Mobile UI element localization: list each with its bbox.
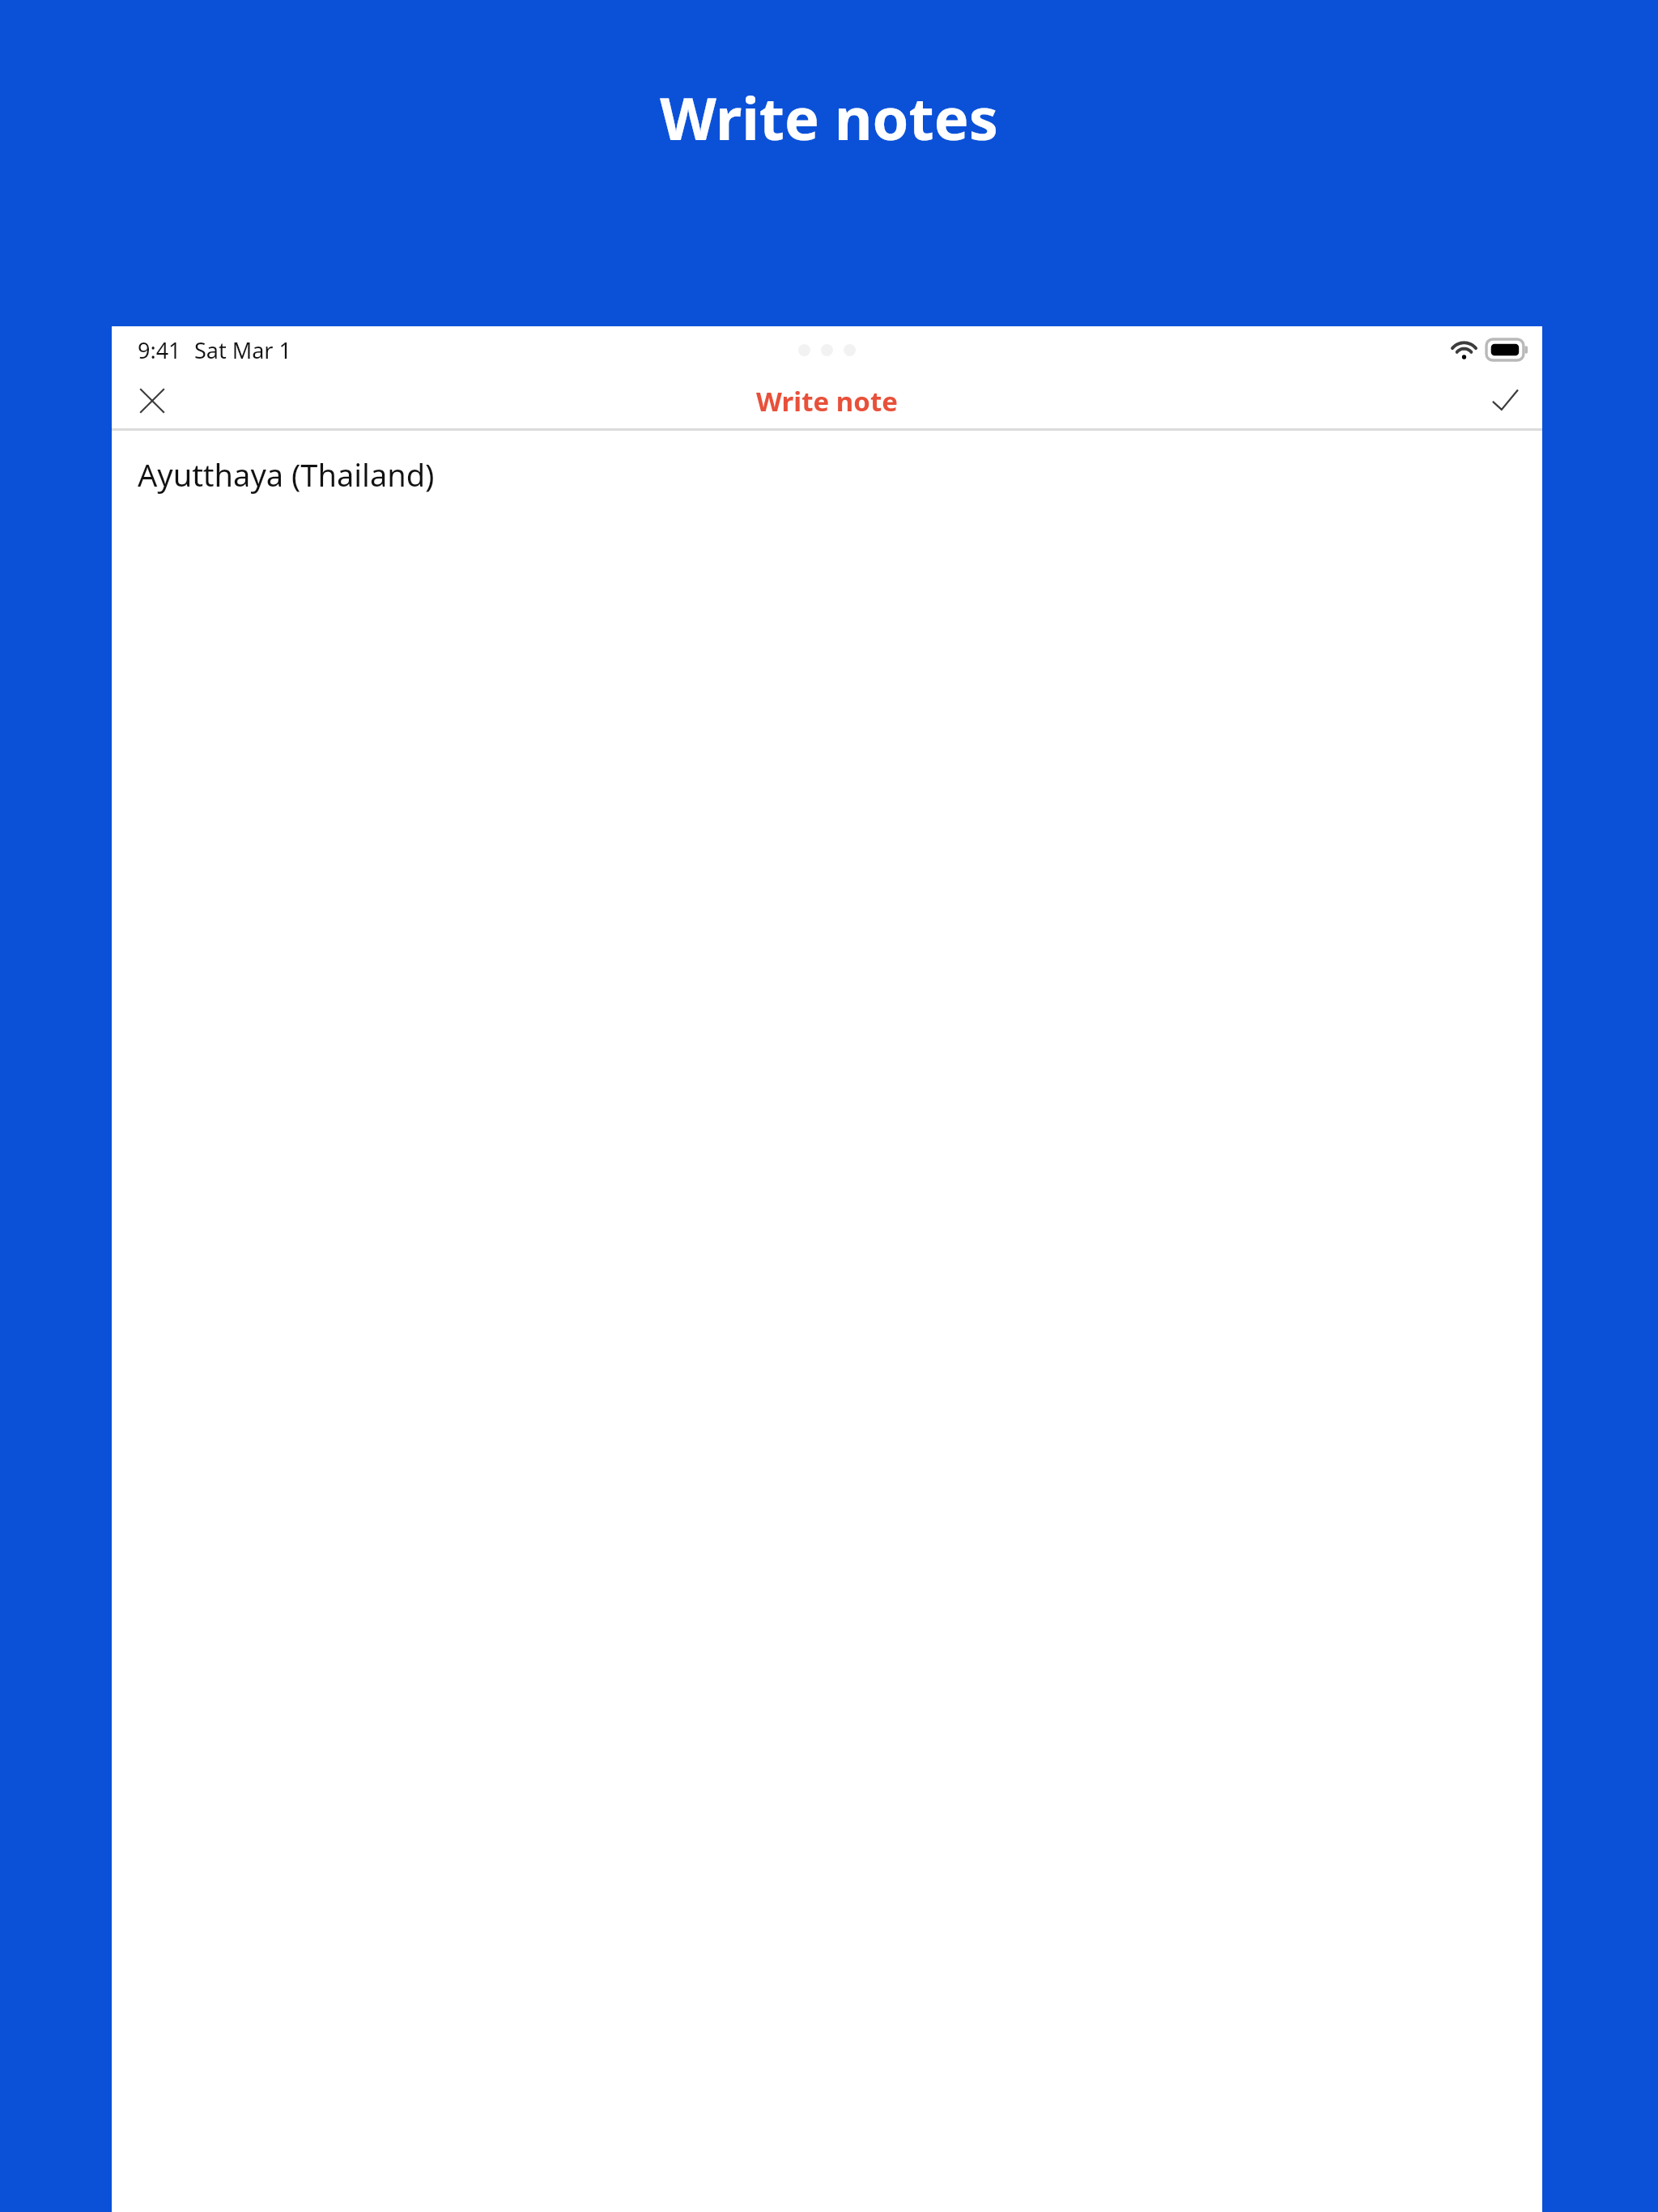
button[interactable]: Write note [756,383,898,419]
button[interactable]: Ayutthaya (Thailand) [112,431,1542,2212]
staticText: 9:41 [138,335,181,365]
staticText: Write notes [660,78,998,157]
button[interactable]: Close [126,375,178,427]
staticText: Ayutthaya (Thailand) [138,453,435,496]
staticText: Sat Mar 1 [194,335,291,365]
button[interactable]: Save note [1479,375,1531,427]
